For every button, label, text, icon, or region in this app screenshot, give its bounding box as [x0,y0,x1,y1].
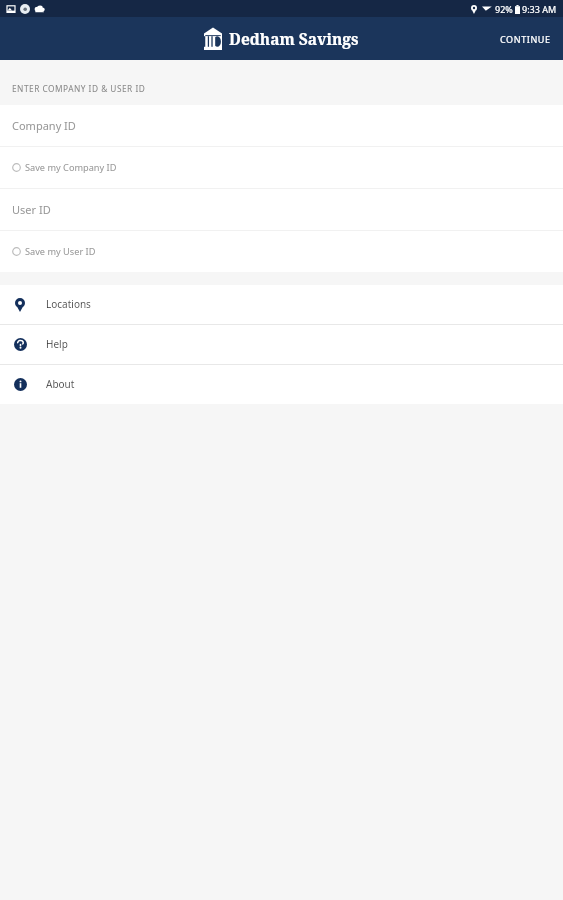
button[interactable]: User ID [0,189,563,230]
staticText: CONTINUE [500,33,551,45]
button[interactable]: CONTINUE [488,25,563,53]
staticText: Save my Company ID [25,161,117,174]
button[interactable]: Save my Company ID [0,147,563,188]
button[interactable]: Save my User ID [0,231,563,272]
staticText: Company ID [12,118,76,133]
staticText: Dedham Savings [229,28,359,49]
staticText: Save my User ID [25,245,96,258]
button[interactable]: Help [0,325,563,364]
button[interactable]: Locations [0,285,563,324]
staticText: Help [46,337,68,351]
staticText: Locations [46,297,91,311]
staticText: User ID [12,202,51,217]
button[interactable]: Dedham Savings home [204,27,359,50]
staticText: 92% [495,3,513,15]
staticText: 9:33 AM [522,3,557,15]
button[interactable]: Company ID [0,105,563,146]
staticText: ENTER COMPANY ID & USER ID [12,83,146,94]
button[interactable]: About [0,365,563,404]
staticText: About [46,377,75,391]
